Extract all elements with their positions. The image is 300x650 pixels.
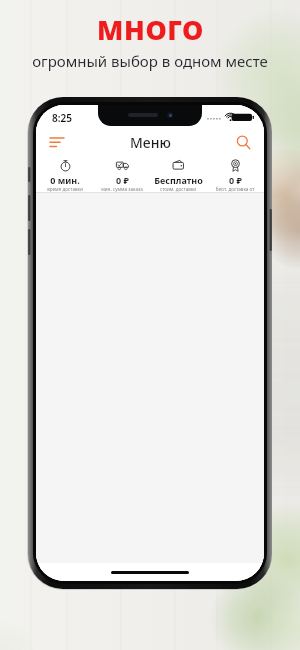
staticText: 0 ₽	[116, 174, 129, 186]
button[interactable]: Меню	[42, 127, 72, 157]
staticText: Бесплатно	[154, 174, 203, 186]
staticText: время доставки	[37, 186, 93, 192]
staticText: МНОГО	[97, 11, 204, 48]
staticText: 0 мин.	[50, 174, 80, 186]
button[interactable]: 0 ₽	[94, 157, 150, 192]
staticText: Меню	[130, 133, 171, 152]
button[interactable]: Бесплатно	[150, 157, 206, 192]
button[interactable]: 0 ₽	[207, 157, 263, 192]
button[interactable]: Поиск	[228, 127, 258, 157]
staticText: бесп. доставка от	[207, 186, 263, 192]
staticText: 8:25	[52, 111, 72, 125]
staticText: огромный выбор в одном месте	[32, 51, 268, 71]
staticText: 0 ₽	[229, 174, 242, 186]
staticText: стоим. доставки	[150, 186, 206, 192]
button[interactable]: 0 мин.	[37, 157, 93, 192]
staticText: мин. сумма заказа	[94, 186, 150, 192]
